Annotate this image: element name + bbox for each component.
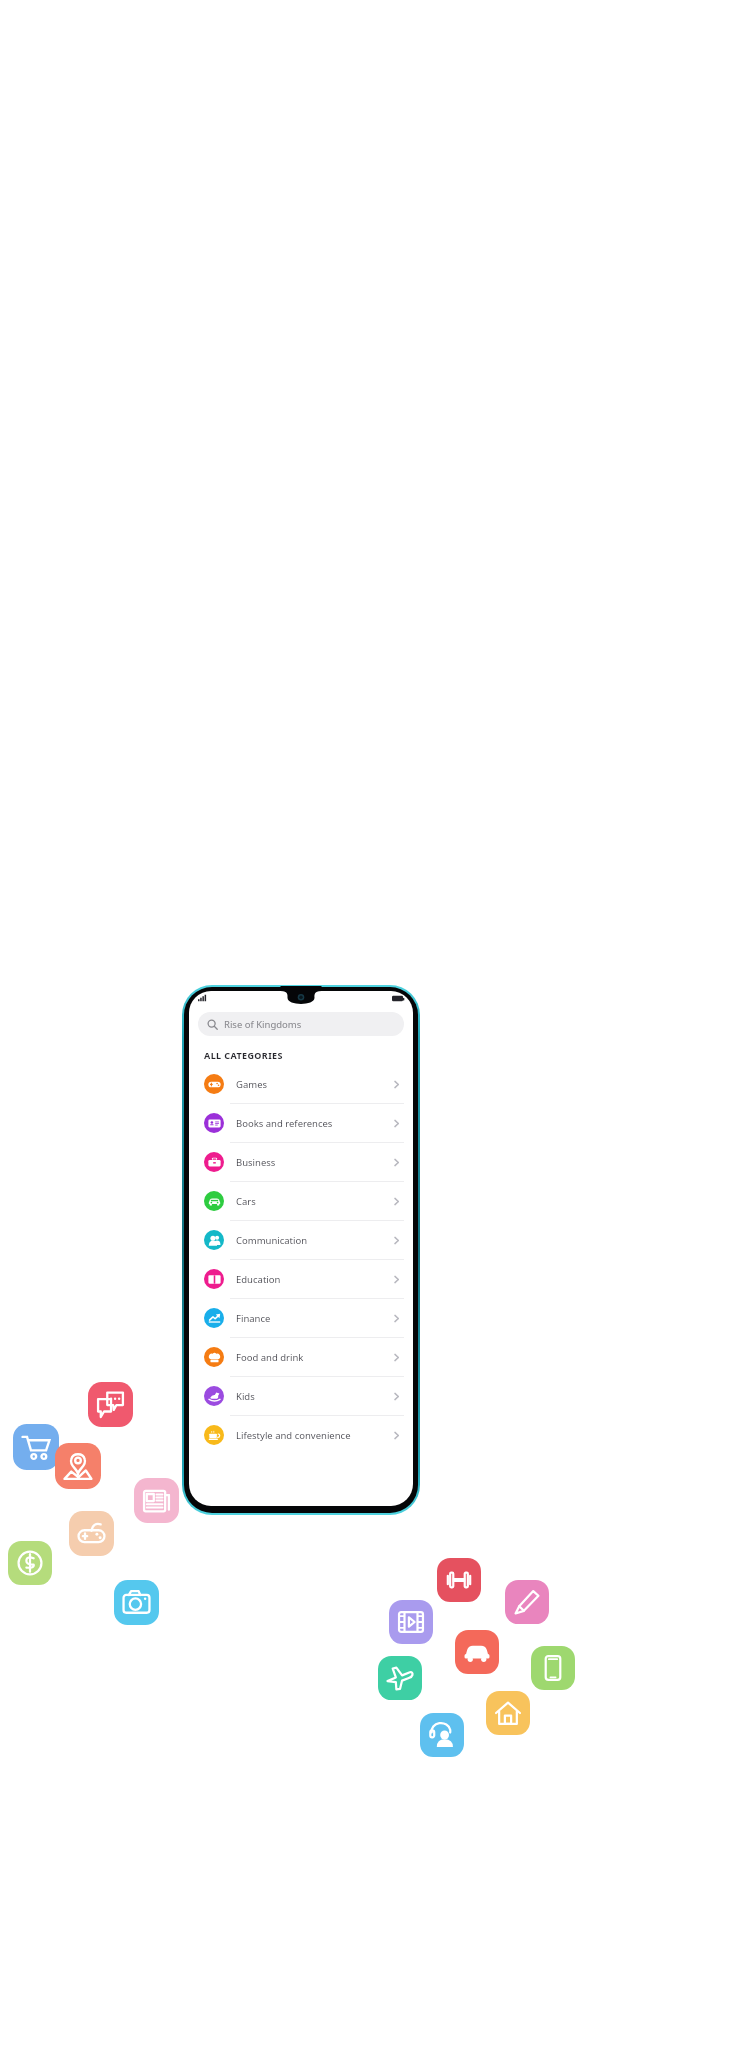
button[interactable]: phone [531, 1646, 575, 1690]
button[interactable]: home [486, 1691, 530, 1735]
staticText: Communication [236, 1234, 308, 1247]
staticText: Rise of Kingdoms [224, 1018, 302, 1031]
button[interactable]: map [55, 1443, 101, 1489]
button[interactable]: pencil [505, 1580, 549, 1624]
button[interactable]: gym [437, 1558, 481, 1602]
staticText: ALL CATEGORIES [204, 1049, 283, 1061]
button[interactable]: Education [189, 1260, 413, 1298]
button[interactable]: Business [189, 1143, 413, 1181]
staticText: Cars [236, 1195, 256, 1208]
button[interactable]: tools [196, 1437, 240, 1481]
button[interactable]: news [134, 1478, 179, 1523]
button[interactable]: Finance [189, 1299, 413, 1337]
button[interactable]: Games [189, 1065, 413, 1103]
button[interactable]: Food and drink [189, 1338, 413, 1376]
button[interactable]: money [8, 1541, 52, 1585]
button[interactable]: Communication [189, 1221, 413, 1259]
staticText: Kids [236, 1390, 255, 1403]
button[interactable]: video [389, 1600, 433, 1644]
button[interactable]: Rise of Kingdoms [198, 1012, 404, 1036]
button[interactable]: Cars [189, 1182, 413, 1220]
button[interactable]: Books and references [189, 1104, 413, 1142]
button[interactable]: plane [378, 1656, 422, 1700]
button[interactable]: support [420, 1713, 464, 1757]
staticText: Food and drink [236, 1351, 304, 1364]
button[interactable]: pad [69, 1511, 114, 1556]
staticText: Finance [236, 1312, 271, 1325]
staticText: Games [236, 1078, 268, 1091]
button[interactable]: cart [13, 1424, 59, 1470]
staticText: Lifestyle and convenience [236, 1429, 351, 1442]
staticText: Books and references [236, 1117, 333, 1130]
button[interactable]: Lifestyle and convenience [189, 1416, 413, 1454]
button[interactable]: car [455, 1630, 499, 1674]
button[interactable]: camera [114, 1580, 159, 1625]
button[interactable]: chat [88, 1382, 133, 1427]
staticText: Business [236, 1156, 276, 1169]
button[interactable]: Kids [189, 1377, 413, 1415]
staticText: Education [236, 1273, 281, 1286]
